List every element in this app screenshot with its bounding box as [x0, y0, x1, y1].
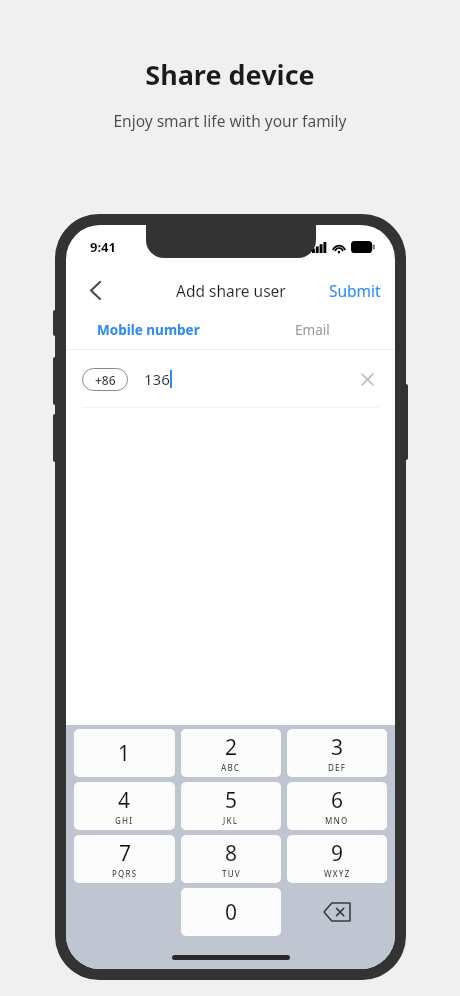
button[interactable]: 0: [181, 888, 281, 936]
staticText: JKL: [223, 815, 239, 826]
staticText: 9: [331, 839, 344, 868]
button[interactable]: 1: [74, 729, 175, 777]
staticText: PQRS: [112, 868, 138, 879]
button[interactable]: 2: [181, 729, 281, 777]
staticText: Email: [295, 321, 330, 339]
staticText: 0: [225, 898, 238, 927]
button[interactable]: +86: [82, 368, 128, 391]
staticText: MNO: [325, 815, 349, 826]
staticText: 3: [331, 733, 344, 762]
staticText: DEF: [328, 762, 347, 773]
button[interactable]: 3: [287, 729, 387, 777]
button[interactable]: 4: [74, 782, 175, 830]
button[interactable]: Delete: [284, 888, 390, 936]
button[interactable]: 9: [287, 835, 387, 883]
button[interactable]: Submit: [329, 280, 381, 301]
button[interactable]: 8: [181, 835, 281, 883]
staticText: 1: [118, 739, 131, 768]
staticText: Enjoy smart life with your family: [113, 110, 347, 131]
staticText: Mobile number: [97, 321, 200, 339]
staticText: 136: [144, 369, 170, 389]
staticText: 6: [331, 786, 344, 815]
staticText: 9:41: [90, 238, 116, 256]
staticText: Share device: [145, 56, 315, 93]
staticText: Add share user: [176, 280, 286, 301]
staticText: GHI: [115, 815, 134, 826]
button[interactable]: Back: [76, 271, 114, 309]
staticText: 8: [225, 839, 238, 868]
button[interactable]: 5: [181, 782, 281, 830]
button[interactable]: 7: [74, 835, 175, 883]
staticText: 7: [119, 839, 132, 868]
staticText: TUV: [222, 868, 241, 879]
staticText: WXYZ: [324, 868, 351, 879]
button[interactable]: Email: [230, 311, 395, 349]
button[interactable]: Clear: [355, 367, 379, 391]
staticText: +86: [95, 372, 116, 388]
staticText: 2: [225, 733, 238, 762]
staticText: 5: [225, 786, 238, 815]
staticText: 4: [118, 786, 131, 815]
button[interactable]: Mobile number: [66, 311, 230, 349]
staticText: Submit: [329, 280, 381, 301]
staticText: ABC: [221, 762, 241, 773]
button[interactable]: 6: [287, 782, 387, 830]
